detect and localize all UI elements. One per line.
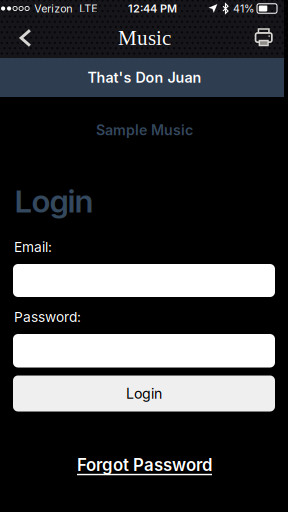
staticText: Password: — [14, 309, 81, 325]
staticText: Sample Music — [96, 121, 193, 138]
staticText: Music — [118, 26, 171, 50]
button[interactable]: Print — [245, 18, 283, 58]
staticText: Verizon — [34, 2, 72, 15]
staticText: 12:44 PM — [128, 2, 177, 15]
button[interactable]: Login — [13, 375, 275, 411]
button[interactable]: Back — [7, 19, 43, 57]
staticText: Email: — [14, 239, 52, 255]
staticText: 41% — [233, 2, 254, 15]
staticText: Forgot Password — [77, 455, 212, 475]
staticText: Login — [126, 385, 162, 402]
staticText: Login — [15, 182, 93, 220]
staticText: That's Don Juan — [87, 69, 201, 86]
staticText: LTE — [79, 2, 97, 15]
button[interactable]: Forgot Password — [0, 455, 284, 475]
